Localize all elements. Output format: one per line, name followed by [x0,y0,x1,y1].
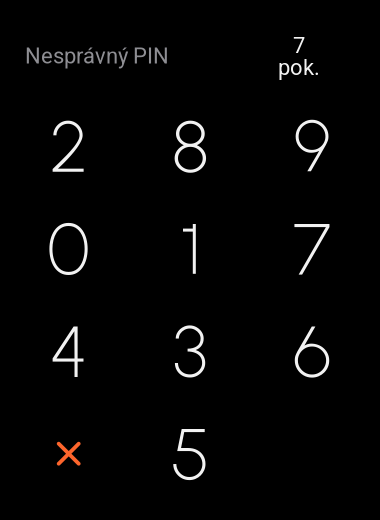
button[interactable]: 8 [129,95,251,198]
staticText: 6 [293,308,331,394]
button[interactable]: 7 [251,198,373,300]
staticText: 5 [171,410,210,497]
staticText: Nesprávný PIN [25,43,169,69]
staticText: 4 [50,308,88,394]
staticText: 8 [172,103,209,190]
staticText: 2 [50,103,88,190]
button[interactable]: 3 [129,300,251,402]
button[interactable]: 2 [8,95,129,198]
button[interactable]: 4 [8,300,129,402]
staticText: pok. [278,55,320,80]
button[interactable] [129,198,251,300]
staticText: 7 [293,33,305,58]
staticText: 0 [47,206,90,292]
button[interactable]: 9 [251,95,373,198]
staticText: 7 [293,206,331,292]
staticText: 3 [173,308,208,394]
staticText: 9 [293,103,330,190]
button[interactable]: 5 [129,402,251,505]
button[interactable]: Delete [8,402,129,505]
button[interactable]: 0 [8,198,129,300]
button[interactable]: 6 [251,300,373,402]
